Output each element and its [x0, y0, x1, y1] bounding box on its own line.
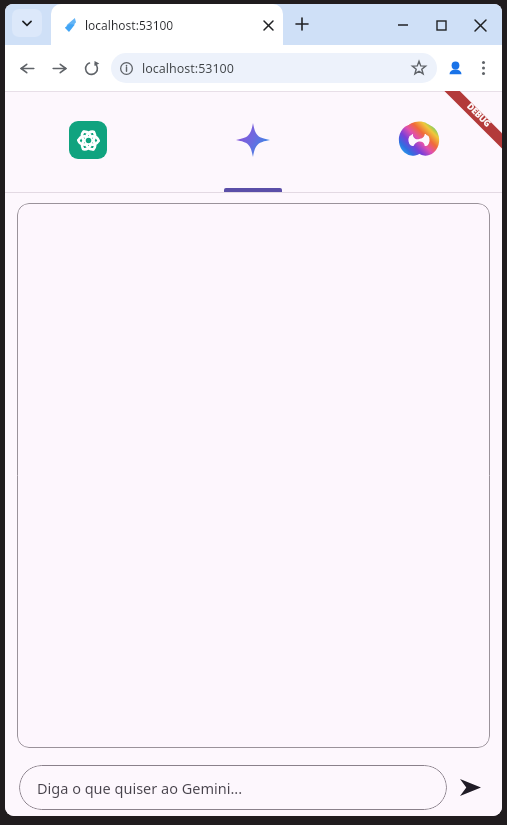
staticText: DEBUG — [464, 100, 494, 130]
button[interactable]: Reload — [75, 52, 107, 84]
button[interactable]: Gemini — [170, 92, 336, 192]
button[interactable]: Diga o que quiser ao Gemini... — [19, 765, 447, 810]
button[interactable]: Minimize — [384, 8, 422, 42]
button[interactable]: Profile — [440, 53, 470, 83]
button[interactable]: ChatGPT — [5, 92, 170, 192]
button[interactable]: Send message — [447, 764, 494, 811]
button[interactable]: Close tab — [259, 16, 277, 34]
button[interactable]: Back — [11, 52, 43, 84]
button[interactable]: Search tabs — [12, 9, 42, 37]
button[interactable]: New tab — [288, 10, 316, 38]
button[interactable]: Bookmark — [410, 59, 428, 77]
button[interactable]: Forward — [43, 52, 75, 84]
button[interactable]: localhost:53100 — [111, 53, 437, 83]
button[interactable]: Copilot — [336, 92, 502, 192]
button[interactable]: localhost:53100 — [51, 4, 283, 45]
button[interactable]: More options — [470, 55, 496, 81]
button[interactable]: Maximize — [422, 8, 460, 42]
staticText: localhost:53100 — [85, 17, 174, 33]
staticText: localhost:53100 — [142, 60, 234, 77]
staticText: Diga o que quiser ao Gemini... — [37, 778, 243, 798]
button[interactable]: Close window — [460, 8, 500, 42]
